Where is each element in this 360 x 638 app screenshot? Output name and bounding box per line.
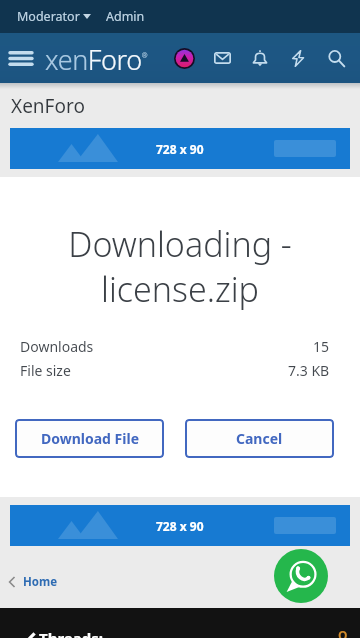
staticText: Moderator bbox=[17, 8, 80, 25]
button[interactable]: Search bbox=[317, 38, 355, 78]
staticText: 728 x 90 bbox=[156, 141, 204, 157]
button[interactable]: Home bbox=[0, 546, 360, 608]
button[interactable]: Advertisement 728 x 90 bbox=[10, 505, 350, 546]
button[interactable]: Your account bbox=[165, 38, 203, 78]
staticText: Home bbox=[23, 574, 58, 590]
button[interactable]: Cancel bbox=[185, 419, 334, 458]
staticText: Cancel bbox=[236, 429, 283, 448]
button[interactable]: Download File bbox=[15, 419, 164, 458]
button[interactable]: Menu bbox=[4, 41, 38, 75]
staticText: Downloading - license.zip bbox=[26, 221, 334, 312]
staticText: Threads: bbox=[39, 628, 103, 638]
button[interactable]: Chat on WhatsApp bbox=[274, 549, 328, 603]
staticText: XenForo bbox=[11, 93, 85, 119]
staticText: Downloads bbox=[20, 337, 94, 356]
staticText: 7.3 KB bbox=[288, 361, 330, 380]
button[interactable]: Inbox bbox=[203, 38, 241, 78]
staticText: Admin bbox=[106, 8, 145, 25]
button[interactable]: Advertisement 728 x 90 bbox=[10, 128, 350, 169]
staticText: 15 bbox=[313, 337, 330, 356]
staticText: 728 x 90 bbox=[156, 518, 204, 534]
button[interactable]: Admin bbox=[99, 1, 157, 32]
button[interactable]: Activity bbox=[279, 38, 317, 78]
button[interactable]: Moderator bbox=[0, 1, 99, 32]
button[interactable]: xenForo® bbox=[45, 41, 148, 78]
staticText: Download File bbox=[41, 429, 139, 448]
button[interactable]: Alerts bbox=[241, 38, 279, 78]
staticText: Q bbox=[338, 627, 348, 638]
staticText: File size bbox=[20, 361, 71, 380]
staticText: xenForo® bbox=[45, 41, 148, 78]
